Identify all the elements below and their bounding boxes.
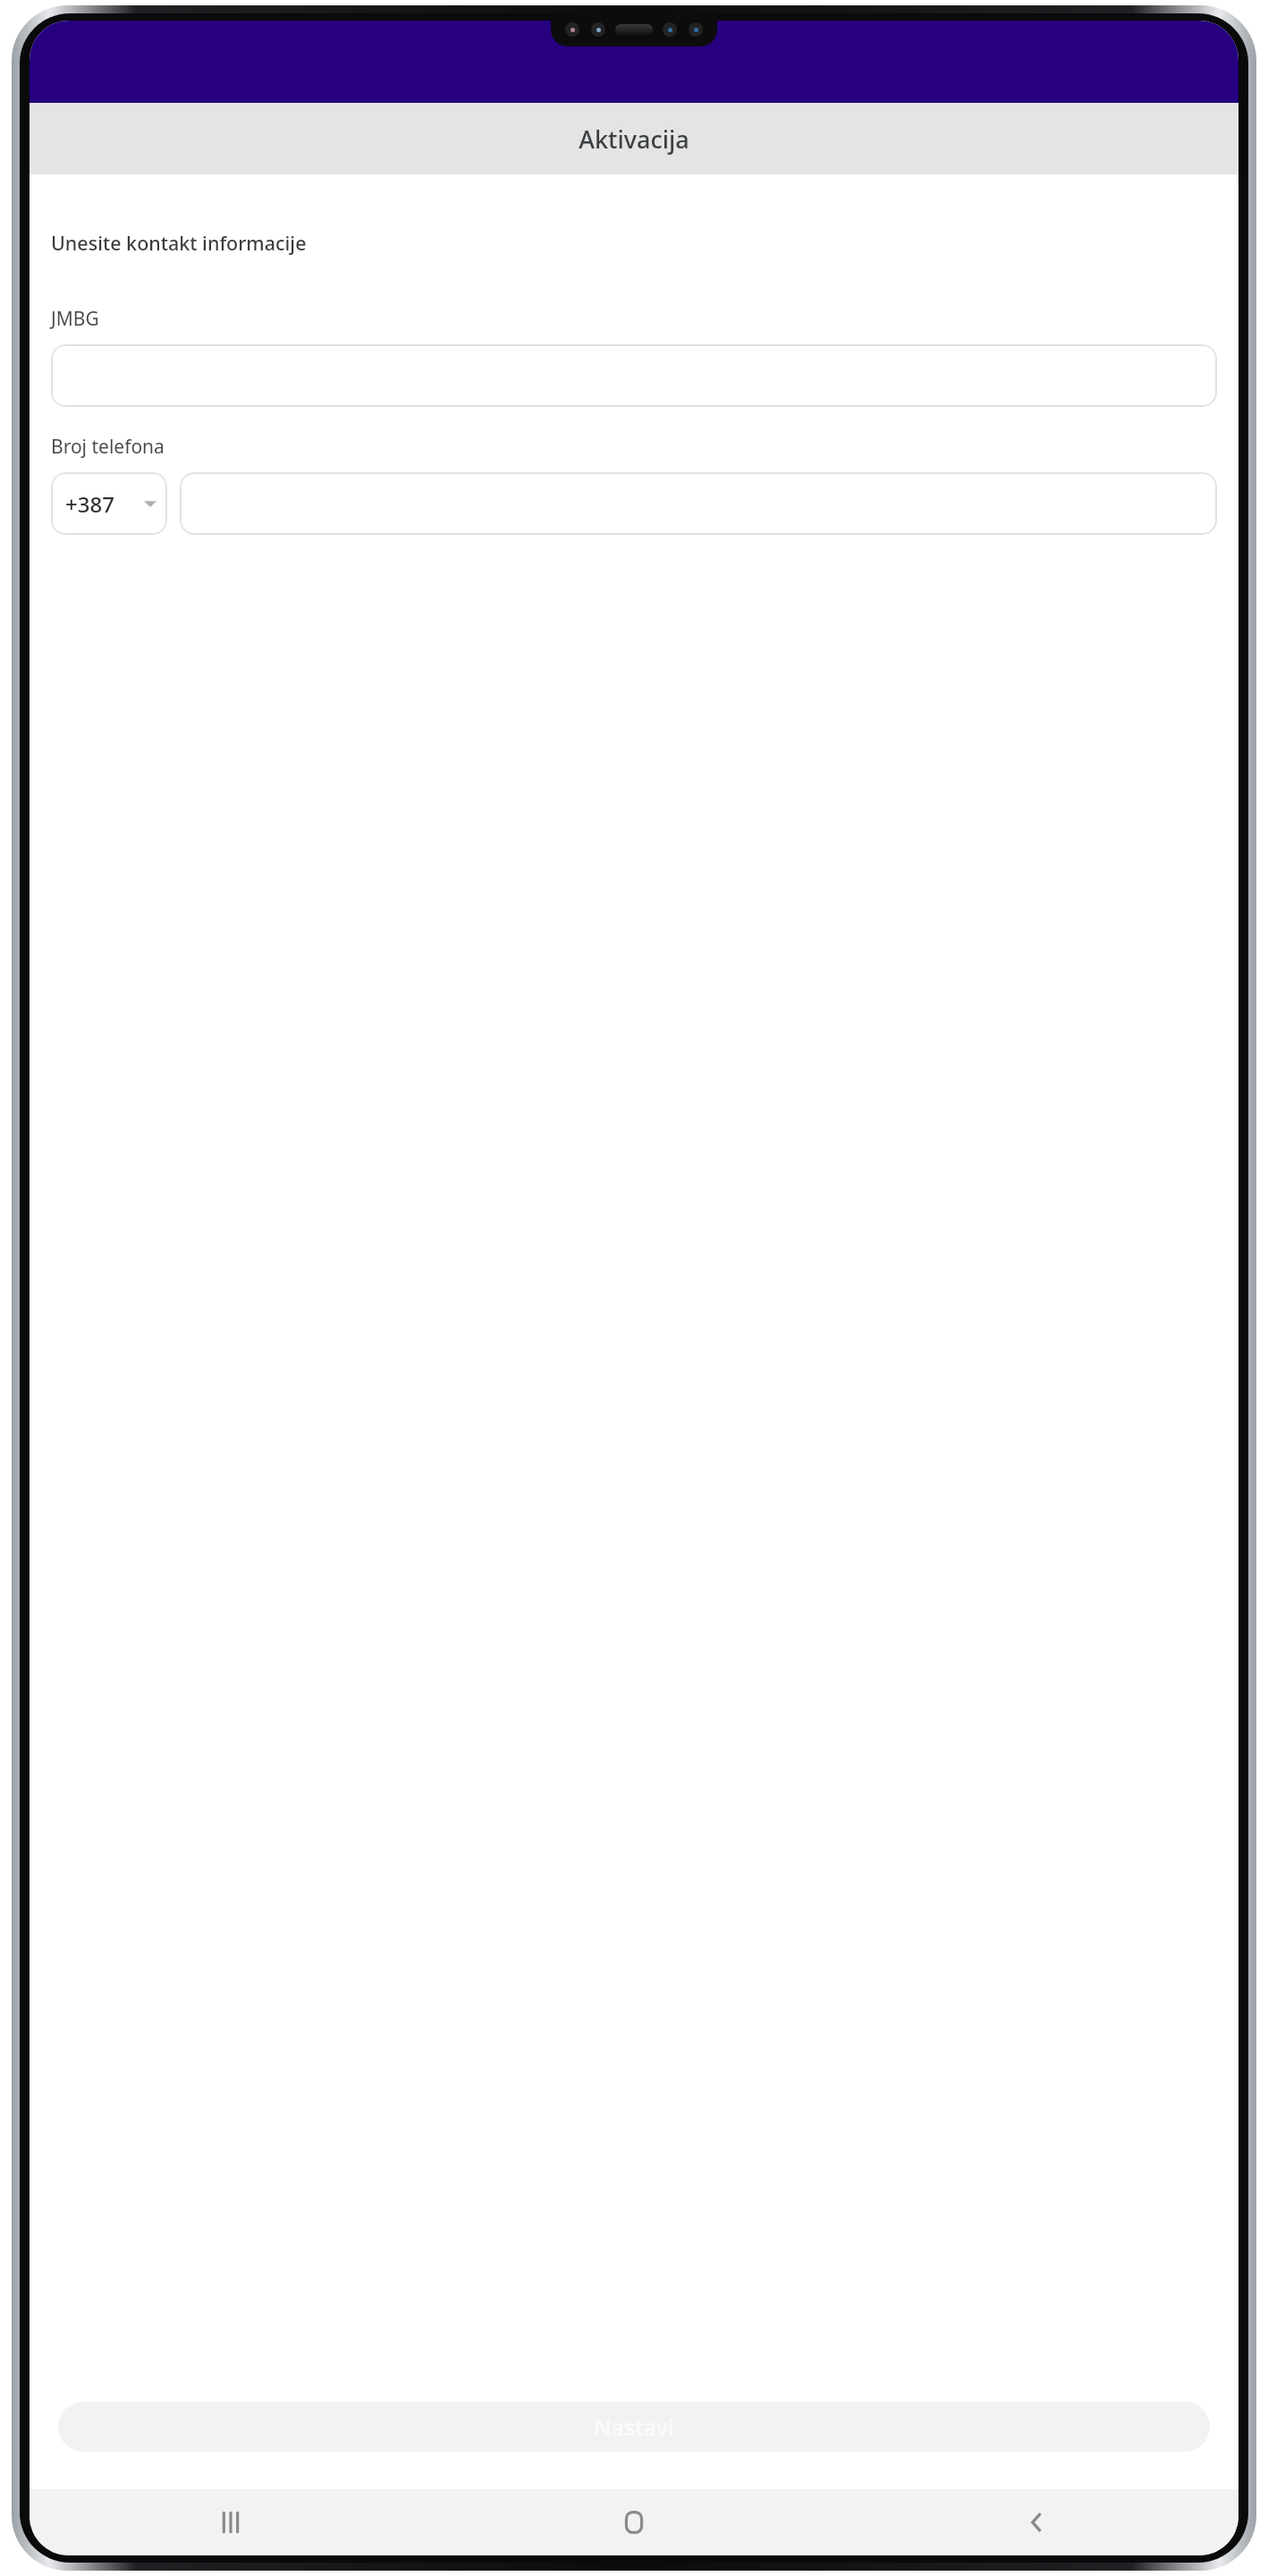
button[interactable]: Home	[432, 2489, 835, 2555]
staticText: Aktivacija	[579, 123, 689, 156]
staticText: JMBG	[51, 306, 99, 332]
staticText: +387	[65, 489, 114, 519]
staticText: Nastavi	[594, 2411, 674, 2442]
staticText: Broj telefona	[51, 434, 165, 460]
staticText: Unesite kontakt informacije	[51, 230, 307, 256]
button[interactable]	[51, 344, 1217, 407]
button[interactable]: Recent apps	[30, 2489, 432, 2555]
button[interactable]: +387	[51, 472, 167, 535]
button[interactable]: Back	[835, 2489, 1238, 2555]
button[interactable]	[180, 472, 1217, 535]
